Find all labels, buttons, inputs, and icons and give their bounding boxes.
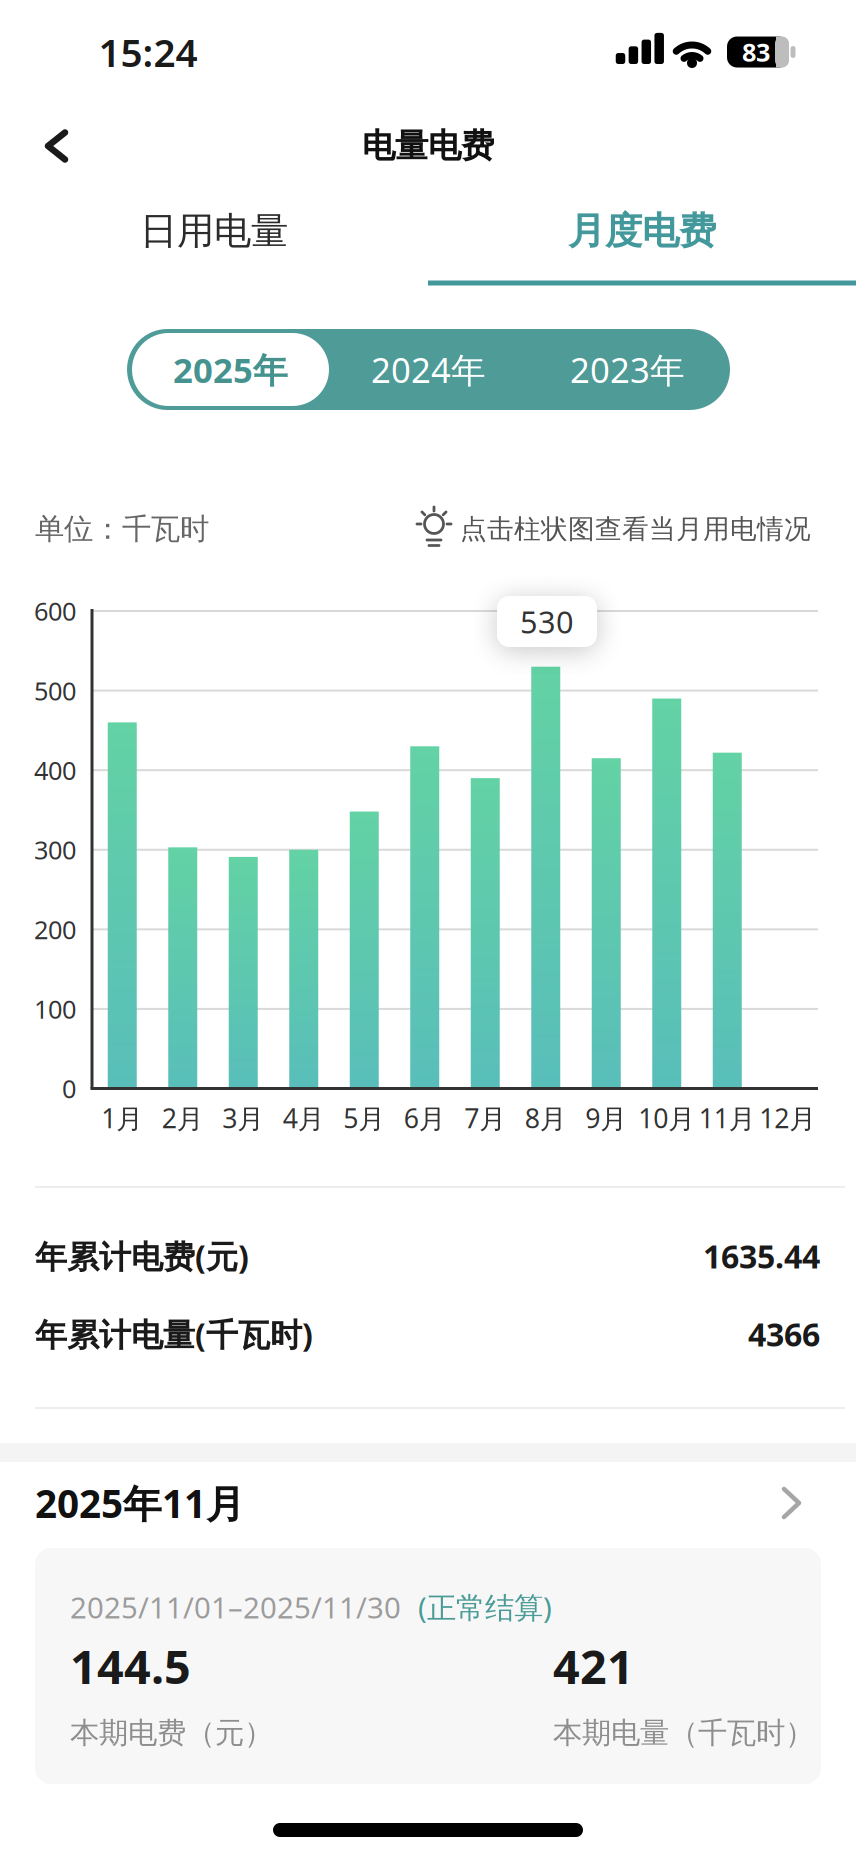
staticText: 421 — [553, 1635, 634, 1697]
staticText: 电量电费 — [362, 125, 494, 166]
button[interactable]: 5月 348千瓦时 — [350, 812, 379, 1087]
button[interactable]: 1月 460千瓦时 — [108, 722, 137, 1087]
staticText: 9月 — [585, 1100, 627, 1136]
staticText: 10月 — [638, 1100, 695, 1136]
button[interactable]: 4月 300千瓦时 — [289, 850, 318, 1087]
button[interactable]: 10月 490千瓦时 — [652, 698, 681, 1087]
staticText: 2025年11月 — [35, 1477, 245, 1529]
staticText: 4月 — [283, 1100, 325, 1136]
staticText: 2024年 — [371, 346, 486, 392]
button[interactable]: 2025年11月 — [35, 1473, 821, 1533]
staticText: 4366 — [748, 1313, 820, 1355]
button[interactable]: 2月 303千瓦时 — [168, 847, 197, 1087]
staticText: 2023年 — [570, 346, 685, 392]
staticText: 点击柱状图查看当月用电情况 — [460, 513, 811, 545]
staticText: 年累计电量(千瓦时) — [35, 1313, 313, 1355]
staticText: 本期电费（元） — [70, 1715, 273, 1751]
staticText: 100 — [34, 992, 76, 1026]
staticText: 3月 — [222, 1100, 264, 1136]
staticText: 400 — [34, 753, 76, 787]
button[interactable]: 月度电费 — [428, 196, 856, 266]
staticText: 本期电量（千瓦时） — [553, 1715, 814, 1751]
staticText: 300 — [34, 833, 76, 866]
button[interactable]: 2025年 — [132, 333, 329, 406]
staticText: 600 — [34, 594, 76, 628]
button[interactable]: 返回 — [45, 129, 69, 162]
staticText: 2025/11/01–2025/11/30 — [70, 1587, 401, 1626]
staticText: 200 — [34, 912, 76, 946]
staticText: 5月 — [343, 1100, 385, 1136]
button[interactable]: 11月 422千瓦时 — [713, 753, 742, 1087]
button[interactable]: 2024年 — [328, 329, 528, 410]
staticText: 1月 — [101, 1100, 143, 1136]
staticText: 日用电量 — [140, 208, 288, 254]
staticText: 2月 — [162, 1100, 204, 1136]
button[interactable]: 3月 291千瓦时 — [229, 857, 258, 1087]
staticText: 83 — [742, 35, 770, 69]
staticText: 15:24 — [98, 26, 197, 78]
button[interactable]: 9月 415千瓦时 — [592, 758, 621, 1087]
staticText: 530 — [520, 601, 574, 642]
staticText: 500 — [34, 674, 76, 707]
button[interactable]: 7月 390千瓦时 — [471, 778, 500, 1087]
staticText: 0 — [62, 1072, 76, 1105]
staticText: 1635.44 — [703, 1235, 820, 1277]
staticText: 11月 — [699, 1100, 756, 1136]
staticText: 年累计电费(元) — [35, 1235, 249, 1277]
button[interactable]: 8月 530千瓦时 — [531, 667, 560, 1087]
staticText: (正常结算) — [418, 1587, 552, 1626]
staticText: 单位：千瓦时 — [35, 511, 209, 547]
staticText: 8月 — [525, 1100, 567, 1136]
staticText: 月度电费 — [568, 208, 716, 254]
staticText: 7月 — [464, 1100, 506, 1136]
button[interactable]: 6月 430千瓦时 — [410, 746, 439, 1087]
staticText: 12月 — [759, 1100, 816, 1136]
button[interactable]: 2023年 — [527, 329, 727, 410]
button[interactable]: 日用电量 — [0, 196, 428, 266]
staticText: 6月 — [404, 1100, 446, 1136]
staticText: 2025年 — [173, 346, 288, 392]
staticText: 144.5 — [70, 1635, 191, 1697]
